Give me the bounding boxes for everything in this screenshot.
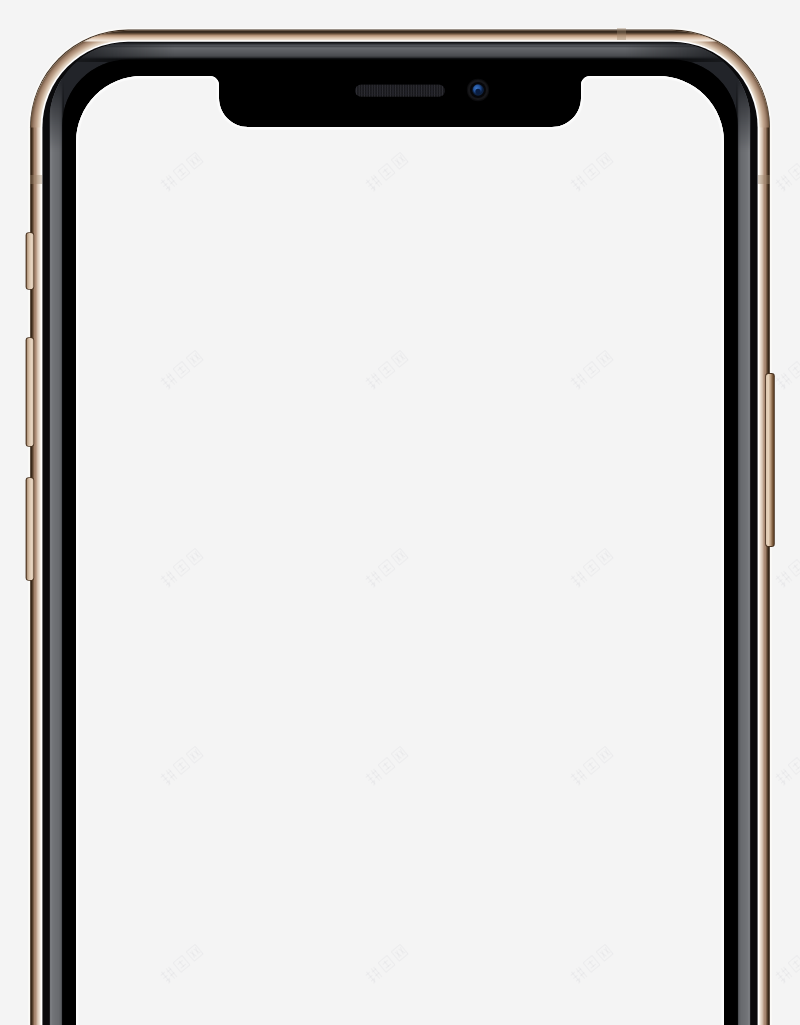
button[interactable]: Ring / silent switch	[24, 232, 38, 290]
button[interactable]: Volume down	[24, 477, 38, 581]
button[interactable]: Side power button	[763, 372, 777, 548]
button[interactable]: Volume up	[24, 337, 38, 447]
button[interactable]: Gold iPhone device mockup with blank scr…	[0, 0, 800, 1025]
